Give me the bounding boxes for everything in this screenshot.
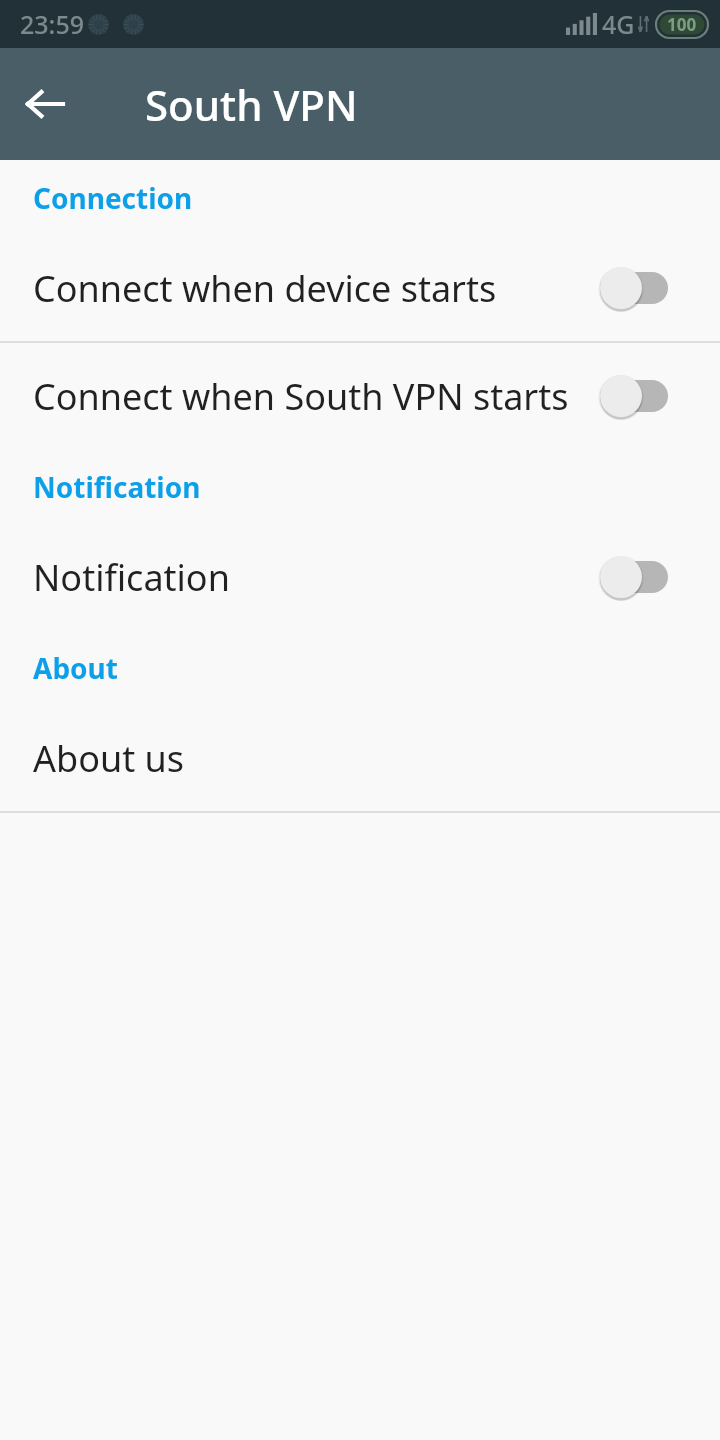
staticText: 23:59	[20, 7, 85, 41]
button[interactable]: Toggle off	[600, 265, 668, 311]
staticText: 100	[667, 13, 697, 36]
staticText: Notification	[33, 553, 600, 602]
staticText: Notification	[33, 468, 201, 506]
button[interactable]: Back	[14, 73, 76, 135]
button[interactable]: Notification	[0, 524, 720, 630]
button[interactable]: Connect when device starts	[0, 235, 720, 341]
staticText: About us	[33, 734, 185, 783]
staticText: About	[33, 649, 118, 687]
button[interactable]: Toggle off	[600, 554, 668, 600]
staticText: Connect when device starts	[33, 264, 600, 313]
staticText: Connection	[33, 179, 193, 217]
button[interactable]: Toggle off	[600, 373, 668, 419]
button[interactable]: About us	[0, 705, 720, 811]
button[interactable]: Connect when South VPN starts	[0, 343, 720, 449]
staticText: South VPN	[145, 76, 358, 133]
staticText: 4G	[602, 7, 635, 41]
staticText: Connect when South VPN starts	[33, 372, 600, 421]
